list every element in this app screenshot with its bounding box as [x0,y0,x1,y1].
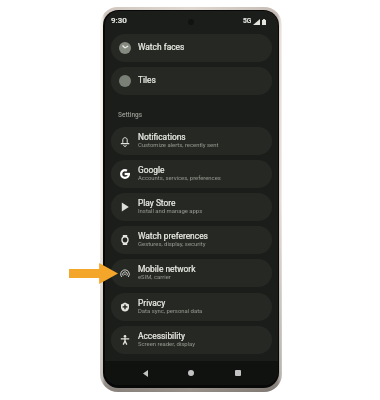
staticText: Gestures, display, security [138,241,206,248]
button[interactable]: Play Store [111,193,272,221]
button[interactable]: Accessibility [111,326,272,354]
staticText: Notifications [138,132,186,142]
button[interactable]: Back [135,363,155,383]
other: Pointer [69,263,118,284]
button[interactable]: Recent apps [228,363,248,383]
button[interactable]: Privacy [111,293,272,321]
staticText: 5G [243,17,252,25]
staticText: Data sync, personal data [138,308,203,315]
button[interactable]: Home [181,363,201,383]
staticText: Tiles [138,75,156,85]
staticText: Screen reader, display [138,341,195,348]
button[interactable]: Notifications [111,127,272,155]
staticText: 9:30 [111,16,127,25]
staticText: Watch faces [138,42,185,52]
staticText: Watch preferences [138,231,208,241]
button[interactable]: Tiles [111,67,272,95]
button[interactable]: Watch faces [111,34,272,62]
staticText: Accessibility [138,331,185,341]
staticText: Mobile network [138,264,196,274]
button[interactable]: Mobile network [111,259,272,287]
button[interactable]: Watch preferences [111,226,272,254]
staticText: Settings [118,111,143,119]
staticText: Privacy [138,298,166,308]
staticText: Accounts, services, preferences [138,175,221,182]
button[interactable]: Google [111,160,272,188]
staticText: eSIM, carrier [138,274,171,281]
staticText: Install and manage apps [138,208,203,215]
staticText: Google [138,165,165,175]
staticText: Customize alerts, recently sent [138,142,219,149]
staticText: Play Store [138,198,176,208]
